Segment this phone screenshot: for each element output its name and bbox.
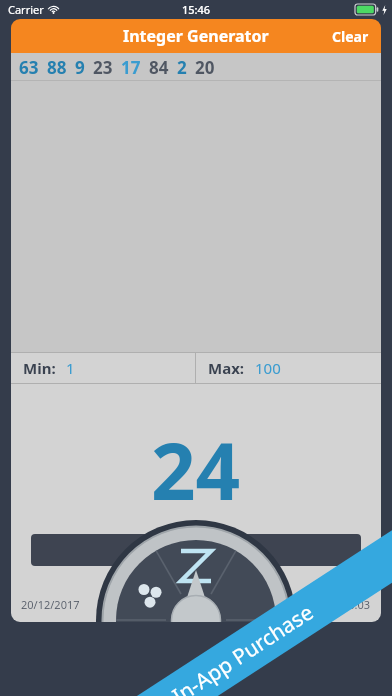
staticText: Integer Generator — [123, 25, 269, 47]
staticText: Clear — [332, 27, 369, 46]
staticText: 63 — [19, 56, 39, 79]
staticText: In-App Purchase — [166, 598, 319, 696]
button[interactable]: In-App Purchase — [66, 529, 392, 696]
staticText: 100 — [255, 358, 281, 378]
staticText: 16:03 — [342, 597, 371, 612]
staticText: 23 — [93, 56, 113, 79]
button[interactable]: Max: — [196, 352, 381, 384]
staticText: 9 — [75, 56, 85, 79]
staticText: Min: — [23, 358, 56, 378]
button[interactable]: Clear — [320, 21, 381, 52]
button[interactable]: Randomizer dial — [96, 520, 296, 622]
staticText: 24 — [151, 417, 241, 523]
staticText: 17 — [121, 56, 141, 79]
staticText: Max: — [208, 358, 245, 378]
staticText: 15:46 — [182, 2, 211, 17]
button[interactable]: RANDOMIZE — [31, 534, 361, 566]
staticText: 2 — [177, 56, 187, 79]
staticText: 88 — [47, 56, 67, 79]
staticText: 84 — [149, 56, 169, 79]
staticText: 20/12/2017 — [21, 597, 80, 612]
staticText: 20 — [195, 56, 215, 79]
staticText: RANDOMIZE — [144, 539, 249, 562]
staticText: Carrier — [8, 2, 44, 17]
button[interactable]: Min: — [11, 352, 195, 384]
staticText: 1 — [66, 358, 75, 378]
